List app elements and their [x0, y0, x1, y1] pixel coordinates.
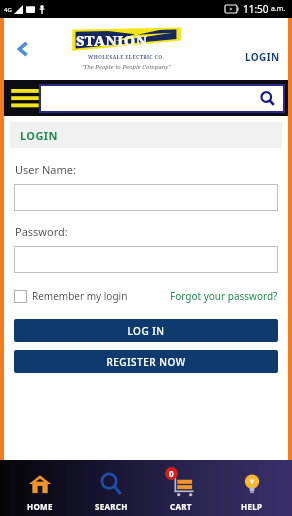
button[interactable]: Forgot your password? — [170, 289, 278, 303]
button[interactable]: HELP — [221, 467, 283, 514]
staticText: LOG IN — [127, 324, 165, 338]
staticText: "The People to People Company" — [81, 63, 171, 71]
staticText: HOME — [27, 501, 53, 512]
button[interactable]: Search field — [39, 84, 285, 113]
staticText: CART — [170, 501, 192, 512]
button[interactable]: HOME — [9, 467, 71, 514]
staticText: User Name: — [15, 162, 76, 177]
staticText: Password: — [15, 224, 68, 239]
button[interactable]: REGISTER NOW — [14, 350, 278, 373]
button[interactable]: 0 — [150, 467, 212, 514]
button[interactable] — [14, 246, 278, 273]
staticText: Remember my login — [32, 289, 128, 303]
button[interactable]: Back — [8, 34, 38, 64]
staticText: 11:50 — [243, 2, 269, 16]
button[interactable]: Remember my login — [14, 289, 128, 303]
staticText: REGISTER NOW — [106, 355, 186, 369]
button[interactable]: SEARCH — [80, 467, 142, 514]
staticText: 0 — [169, 468, 174, 479]
staticText: HELP — [241, 501, 263, 512]
button[interactable]: Menu — [8, 83, 40, 113]
staticText: STANION — [76, 31, 148, 50]
staticText: LOGIN — [245, 50, 280, 64]
staticText: WHOLESALE ELECTRIC CO. — [88, 54, 165, 61]
staticText: Forgot your password? — [170, 289, 278, 303]
staticText: SEARCH — [95, 501, 128, 512]
button[interactable]: LOG IN — [14, 319, 278, 342]
button[interactable] — [14, 184, 278, 211]
staticText: a.m. — [271, 4, 286, 14]
button[interactable]: LOGIN — [237, 46, 288, 68]
staticText: LOGIN — [20, 128, 58, 143]
staticText: 4G — [4, 6, 12, 14]
